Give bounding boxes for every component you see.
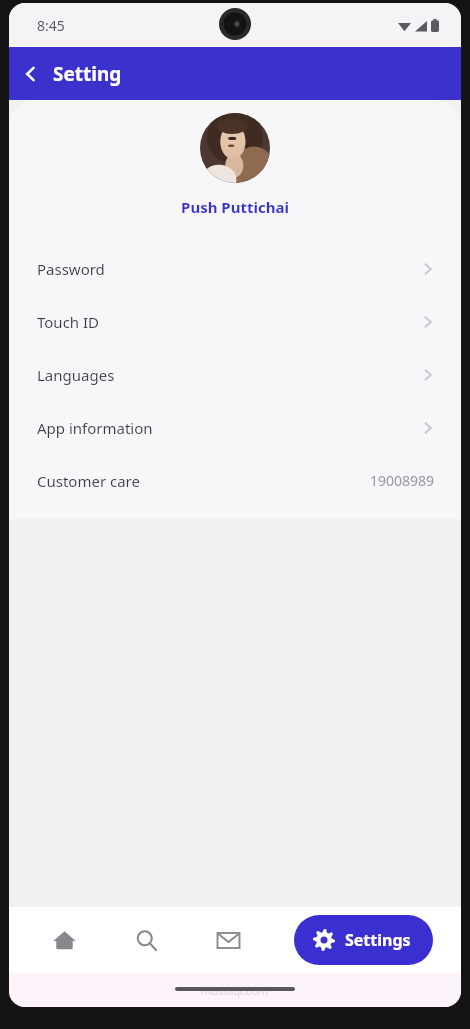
button[interactable]: Home [23, 912, 105, 968]
button[interactable]: Customer care [9, 454, 461, 507]
button[interactable]: Back [9, 52, 53, 96]
button[interactable]: Settings [294, 915, 433, 965]
staticText: Setting [53, 61, 122, 87]
staticText: Password [37, 259, 105, 279]
staticText: Touch ID [37, 312, 100, 332]
button[interactable]: Mail [187, 912, 269, 968]
staticText: Customer care [37, 471, 140, 491]
button[interactable]: Search [105, 912, 187, 968]
button[interactable]: Touch ID [9, 295, 461, 348]
staticText: Languages [37, 365, 115, 385]
button[interactable]: Password [9, 242, 461, 295]
button[interactable]: App information [9, 401, 461, 454]
staticText: Settings [345, 929, 411, 951]
staticText: App information [37, 418, 153, 438]
staticText: 8:45 [37, 16, 65, 35]
button[interactable]: Languages [9, 348, 461, 401]
staticText: Push Puttichai [9, 197, 461, 217]
staticText: 19008989 [370, 471, 435, 490]
staticText: mostaql.com [201, 983, 269, 998]
